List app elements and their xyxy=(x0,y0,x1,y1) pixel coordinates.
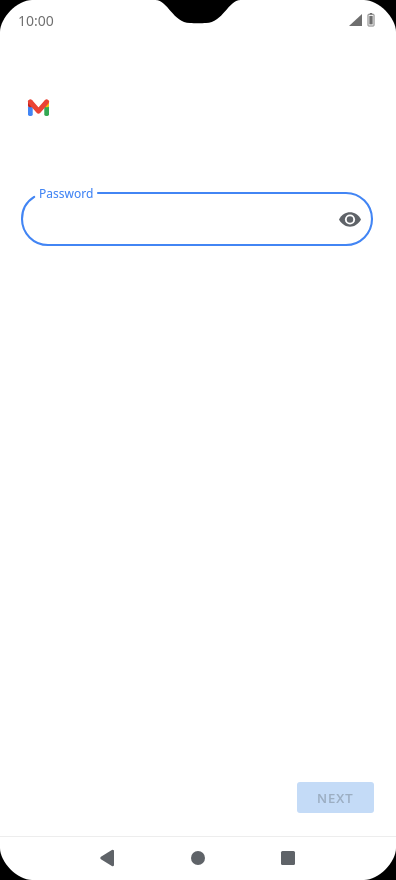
staticText: Password xyxy=(39,185,94,201)
staticText: 10:00 xyxy=(18,11,54,30)
button[interactable]: Back xyxy=(87,838,127,878)
button[interactable]: Recent apps xyxy=(268,838,308,878)
staticText: NEXT xyxy=(317,789,354,807)
button[interactable]: Show password xyxy=(327,197,372,242)
button[interactable] xyxy=(22,193,372,245)
button[interactable]: NEXT xyxy=(297,782,374,813)
button[interactable]: Home xyxy=(178,838,218,878)
